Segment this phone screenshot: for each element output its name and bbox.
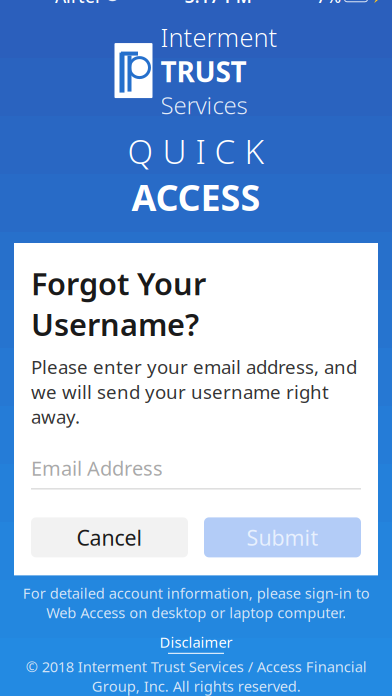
staticText: Submit xyxy=(246,523,318,551)
staticText: Cancel xyxy=(76,523,142,551)
staticText: 7% xyxy=(316,0,341,8)
staticText: Disclaimer xyxy=(159,632,232,652)
staticText: 3:17 PM xyxy=(185,0,252,8)
staticText: ⚡ xyxy=(371,0,386,3)
staticText: TRUST xyxy=(160,53,246,90)
staticText: For detailed account information, please… xyxy=(22,583,369,622)
staticText: Airtel xyxy=(55,0,100,8)
staticText: ACCESS xyxy=(131,173,260,221)
staticText: Please enter your email address, and we … xyxy=(31,354,357,429)
staticText: Forgot Your Username? xyxy=(31,263,206,344)
staticText: Services xyxy=(160,89,247,121)
staticText: Interment xyxy=(160,20,277,54)
staticText: Q U I C K xyxy=(127,129,264,173)
staticText: Email Address xyxy=(31,455,163,481)
button[interactable]: Cancel xyxy=(31,517,188,557)
staticText: © 2018 Interment Trust Services / Access… xyxy=(25,657,366,696)
button[interactable]: Submit xyxy=(204,517,361,557)
button[interactable]: Disclaimer xyxy=(159,632,232,654)
